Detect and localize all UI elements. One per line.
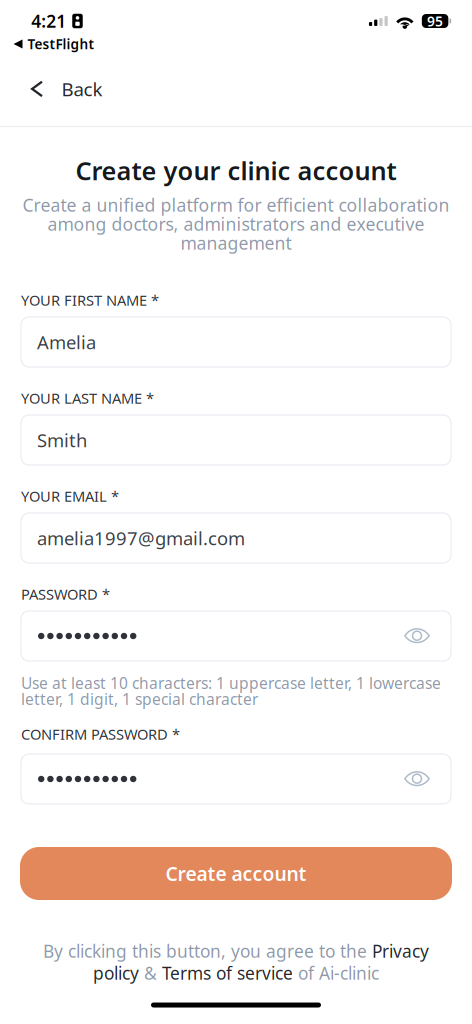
staticText: PASSWORD * [21,584,110,604]
staticText: Smith [37,427,87,453]
staticText: among doctors, administrators and execut… [47,212,424,236]
staticText: YOUR LAST NAME * [21,388,154,408]
button[interactable]: Terms of service [162,961,293,985]
staticText: Amelia [37,329,96,355]
button[interactable]: Back [1,64,122,114]
button[interactable]: Privacy [372,939,429,963]
staticText: CONFIRM PASSWORD * [21,724,180,744]
staticText: of Ai-clinic [293,961,379,985]
staticText: YOUR EMAIL * [21,486,119,506]
button[interactable]: Show password [383,754,451,804]
button[interactable]: Show password [383,611,451,661]
staticText: policy [93,961,139,985]
staticText: Use at least 10 characters: 1 uppercase … [21,672,441,693]
button[interactable]: TestFlight [2,30,105,58]
staticText: Create a unified platform for efficient … [22,193,449,217]
button[interactable]: policy [93,961,139,985]
staticText: management [180,231,291,255]
staticText: 4:21 [31,9,66,33]
button[interactable]: Create account [20,847,452,900]
staticText: YOUR FIRST NAME * [21,290,159,310]
staticText: TestFlight [27,35,94,53]
staticText: Create account [165,860,306,887]
staticText: & [139,961,162,985]
staticText: amelia1997@gmail.com [37,525,245,551]
staticText: Privacy [372,939,429,963]
staticText: Back [61,76,102,102]
staticText: letter, 1 digit, 1 special character [21,688,258,710]
staticText: By clicking this button, you agree to th… [43,939,372,963]
staticText: Terms of service [162,961,293,985]
staticText: Create your clinic account [75,153,396,188]
staticText: 95 [427,12,443,30]
